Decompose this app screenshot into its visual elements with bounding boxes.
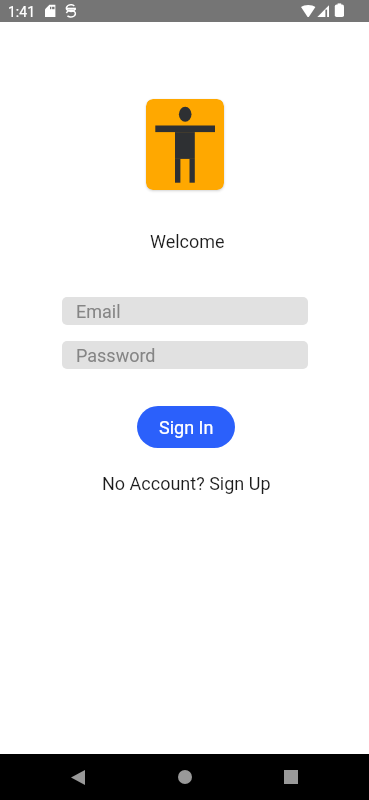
- button[interactable]: Email: [62, 297, 308, 325]
- staticText: Welcome: [150, 231, 225, 252]
- button[interactable]: Back: [53, 754, 102, 800]
- staticText: No Account? Sign Up: [102, 473, 271, 494]
- button[interactable]: Sign In: [137, 406, 235, 448]
- button[interactable]: No Account? Sign Up: [93, 471, 279, 495]
- button[interactable]: Password: [62, 341, 308, 369]
- staticText: Sign In: [159, 417, 214, 438]
- staticText: Email: [76, 301, 121, 322]
- button[interactable]: Home: [160, 754, 209, 800]
- staticText: 1:41: [8, 4, 35, 20]
- staticText: Password: [76, 345, 156, 366]
- button[interactable]: Recent apps: [266, 754, 315, 800]
